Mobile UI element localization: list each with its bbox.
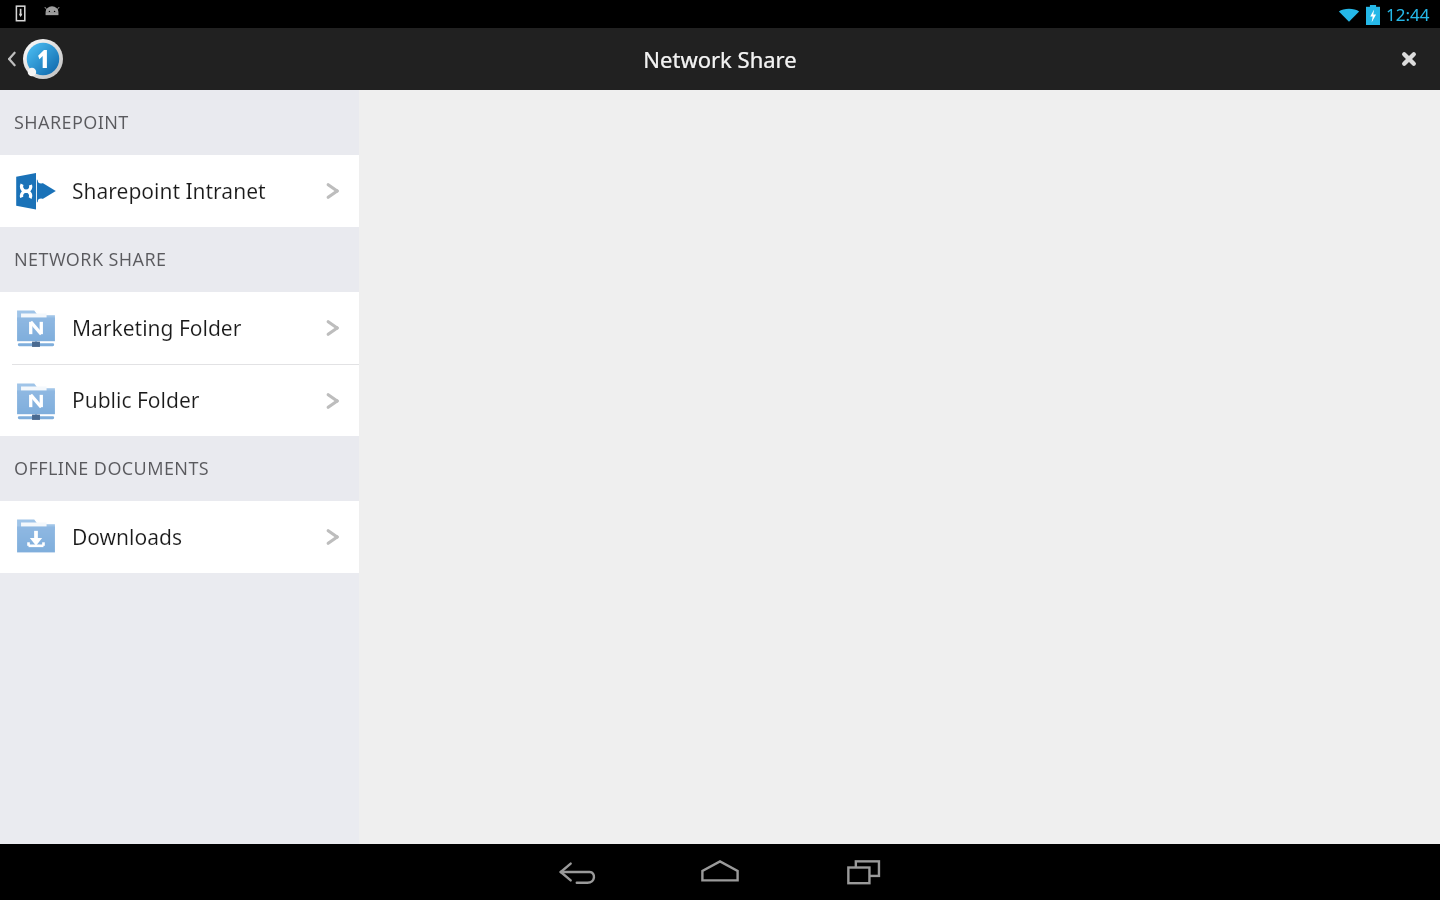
staticText: Marketing Folder [72,314,242,343]
button[interactable]: Downloads [0,501,359,573]
button[interactable]: Back [504,844,648,900]
button[interactable]: Home [648,844,792,900]
button[interactable]: Public Folder [0,365,359,436]
staticText: SHAREPOINT [14,110,129,135]
staticText: Downloads [72,523,182,552]
staticText: 12:44 [1386,3,1430,26]
button[interactable]: Sharepoint Intranet [0,155,359,227]
staticText: Sharepoint Intranet [72,177,266,206]
button[interactable]: Recent apps [792,844,936,900]
button[interactable]: Back [4,34,70,84]
button[interactable]: Close [1378,28,1440,90]
staticText: NETWORK SHARE [14,247,167,272]
staticText: OFFLINE DOCUMENTS [14,456,210,481]
staticText: Network Share [643,44,797,74]
staticText: Public Folder [72,386,200,415]
button[interactable]: Marketing Folder [0,292,359,364]
